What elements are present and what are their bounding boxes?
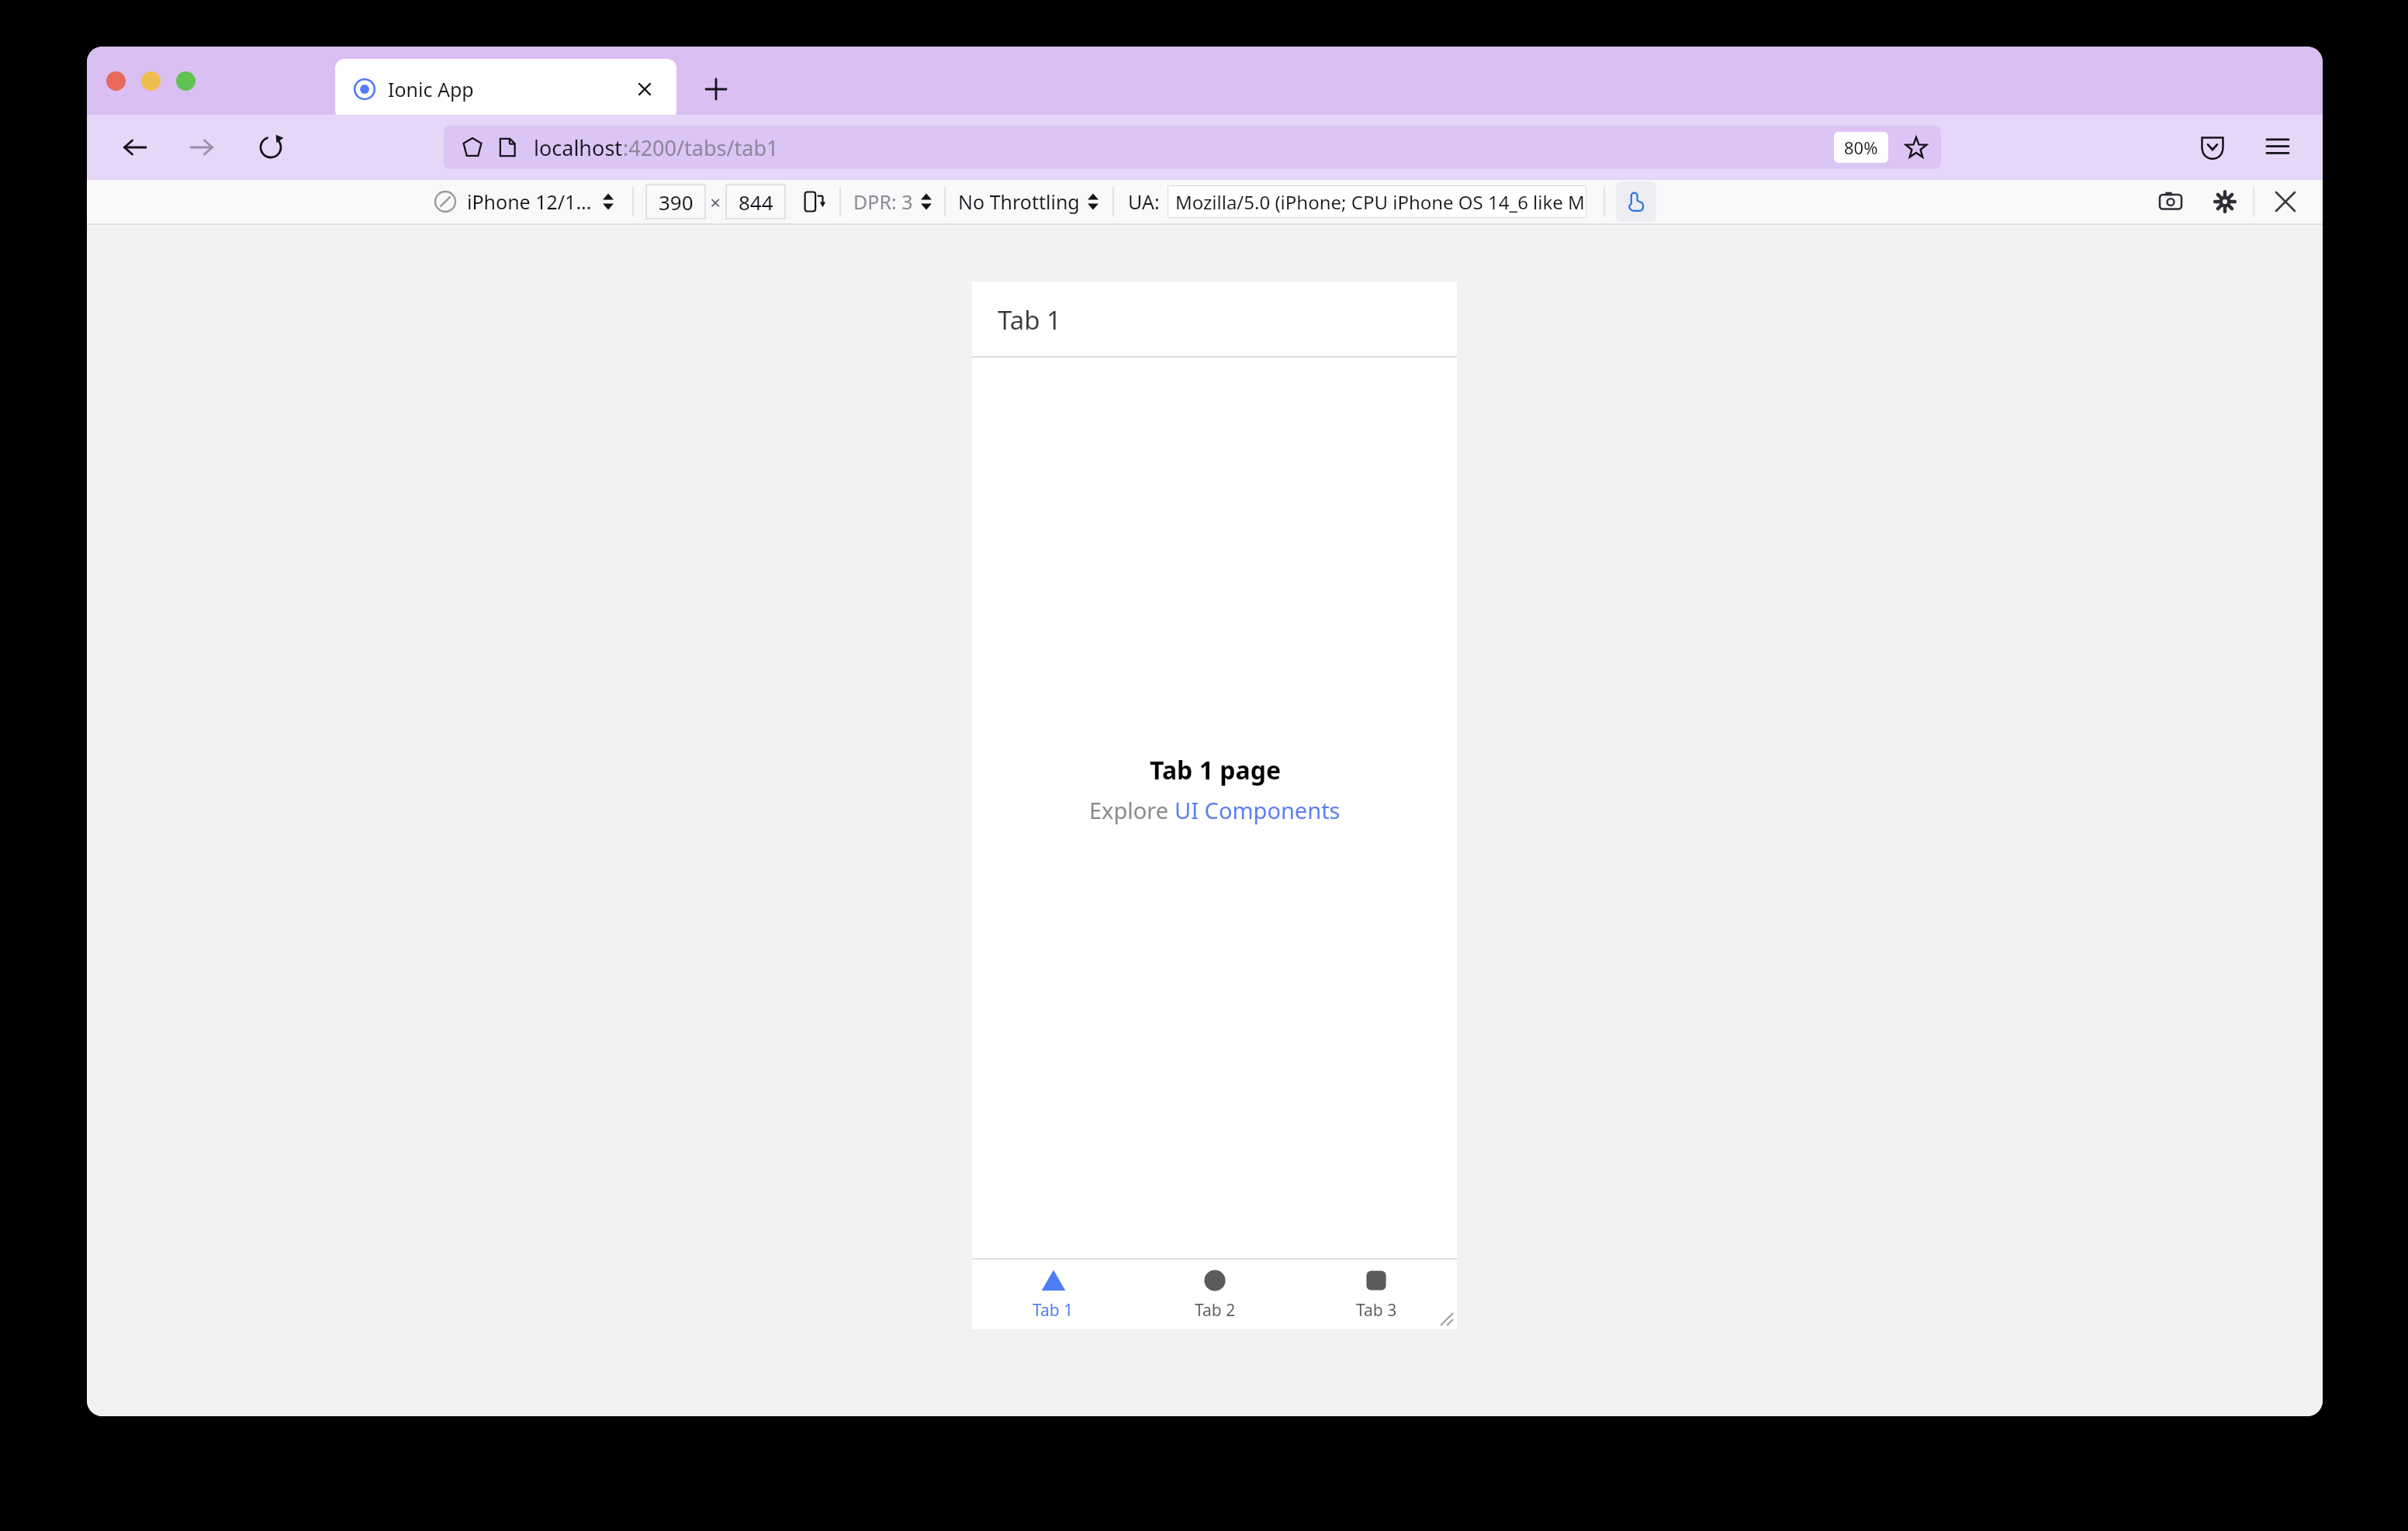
staticText: 390 — [659, 188, 694, 216]
button[interactable]: UI Components — [1175, 795, 1341, 825]
staticText: Mozilla/5.0 (iPhone; CPU iPhone OS 14_6 … — [1175, 189, 1585, 215]
staticText: 844 — [739, 188, 773, 216]
staticText: UI Components — [1175, 795, 1341, 825]
button[interactable]: 844 — [726, 185, 785, 219]
staticText: × — [705, 189, 726, 215]
staticText: Ionic App — [388, 76, 474, 102]
staticText: Tab 1 — [998, 302, 1061, 337]
staticText: Tab 2 — [1195, 1299, 1236, 1322]
button[interactable] — [106, 71, 126, 91]
button[interactable]: Menu — [2261, 130, 2295, 164]
button[interactable]: localhost — [444, 126, 1941, 169]
staticText: Tab 3 — [1356, 1299, 1397, 1322]
button[interactable]: Reload — [253, 130, 289, 165]
button[interactable]: Rotate — [797, 186, 829, 217]
button[interactable]: Bookmark — [1899, 130, 1933, 164]
button[interactable]: No Throttling — [958, 188, 1098, 215]
staticText: UA: — [1128, 188, 1160, 215]
staticText: Explore — [1089, 795, 1175, 825]
button[interactable]: Tab 3 — [1296, 1260, 1457, 1329]
button[interactable]: Back — [116, 130, 152, 165]
staticText: :4200/tabs/tab1 — [623, 133, 779, 162]
staticText: DPR: 3 — [853, 188, 913, 215]
staticText: iPhone 12/1... — [467, 188, 592, 215]
button[interactable]: 80% — [1844, 136, 1878, 159]
button[interactable]: New tab — [700, 73, 732, 105]
button[interactable]: Mozilla/5.0 (iPhone; CPU iPhone OS 14_6 … — [1168, 185, 1586, 218]
button[interactable]: Forward — [185, 130, 220, 165]
button[interactable]: Save to Pocket — [2195, 130, 2230, 164]
staticText: Tab 1 page — [1150, 753, 1281, 787]
button[interactable]: Take screenshot — [2150, 181, 2191, 222]
button[interactable]: Ionic App — [335, 59, 676, 119]
button[interactable] — [176, 71, 195, 91]
button[interactable]: Settings — [2205, 181, 2245, 222]
staticText: 80% — [1844, 136, 1878, 159]
button[interactable]: Tab 2 — [1134, 1260, 1296, 1329]
button[interactable]: Tab 1 — [972, 1260, 1134, 1329]
staticText: localhost — [534, 133, 623, 162]
button[interactable]: Toggle touch simulation — [1616, 181, 1656, 222]
button[interactable]: 390 — [646, 185, 705, 219]
staticText: Tab 1 — [1033, 1299, 1074, 1322]
button[interactable]: DPR: 3 — [853, 188, 932, 215]
button[interactable] — [141, 71, 161, 91]
button[interactable]: Close tab — [631, 76, 658, 102]
button[interactable]: iPhone 12/1... — [428, 188, 620, 215]
staticText: No Throttling — [958, 188, 1080, 215]
button[interactable]: Close — [2265, 181, 2306, 222]
